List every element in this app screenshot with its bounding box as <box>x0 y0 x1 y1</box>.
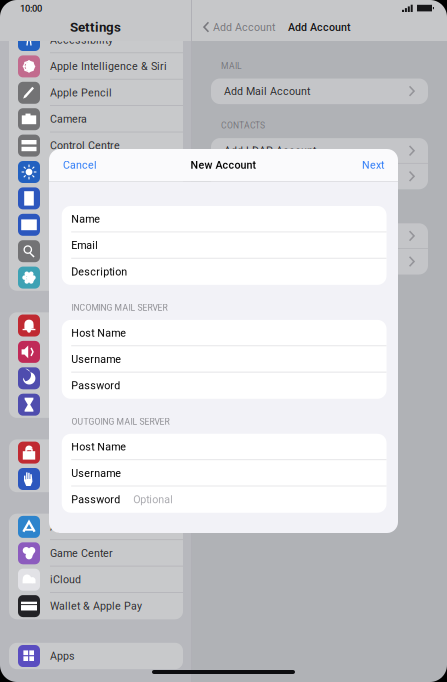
staticText: Apple Pencil <box>50 86 112 99</box>
staticText: OUTGOING MAIL SERVER <box>71 417 169 427</box>
staticText: Game Center <box>50 547 113 559</box>
staticText: Add Subscribed Calendar <box>224 255 348 268</box>
staticText: Add Mail Account <box>224 85 310 98</box>
button[interactable]: Name <box>62 206 386 232</box>
button[interactable]: Apps <box>9 643 183 669</box>
button[interactable]: Sounds <box>9 339 183 365</box>
button[interactable]: Accessibility <box>9 27 183 53</box>
staticText: Display & Brightness <box>50 166 152 178</box>
staticText: Optional <box>133 493 173 506</box>
button[interactable]: Add CalDAV Account <box>211 223 428 249</box>
button[interactable]: iCloud <box>9 566 183 593</box>
button[interactable]: Apple Intelligence & Siri <box>9 53 183 80</box>
staticText: Email <box>71 239 98 252</box>
button[interactable]: Cancel <box>63 159 97 171</box>
staticText: Sounds <box>50 346 86 358</box>
staticText: Name <box>71 213 100 225</box>
button[interactable]: Password <box>62 486 386 513</box>
button[interactable]: Multitasking & Gestures <box>9 212 183 238</box>
staticText: Privacy & Security <box>50 473 138 485</box>
button[interactable]: Notifications <box>9 312 183 339</box>
button[interactable]: Game Center <box>9 540 183 566</box>
button[interactable]: Wallet & Apple Pay <box>9 593 183 619</box>
staticText: iCloud <box>50 573 81 586</box>
button[interactable]: App Store <box>9 514 183 540</box>
staticText: Cancel <box>63 159 97 171</box>
staticText: Wallpaper <box>50 271 99 284</box>
staticText: Password <box>71 379 120 392</box>
staticText: Add Account <box>213 21 275 33</box>
button[interactable]: Home Screen & App Library <box>9 185 183 212</box>
staticText: INCOMING MAIL SERVER <box>71 303 167 313</box>
staticText: Host Name <box>71 327 126 339</box>
button[interactable]: Username <box>62 460 386 486</box>
staticText: MAIL <box>221 61 242 71</box>
button[interactable]: Camera <box>9 106 183 132</box>
button[interactable]: Next <box>362 159 384 171</box>
button[interactable]: Display & Brightness <box>9 159 183 185</box>
staticText: Settings <box>70 19 121 35</box>
staticText: Focus <box>50 372 80 384</box>
staticText: Add CalDAV Account <box>224 230 326 242</box>
staticText: Host Name <box>71 441 126 453</box>
staticText: App Store <box>50 521 97 533</box>
button[interactable]: Search <box>9 238 183 264</box>
staticText: Accessibility <box>50 34 113 46</box>
button[interactable]: Add Account <box>202 21 275 33</box>
staticText: Add LDAP Account <box>224 145 316 157</box>
button[interactable]: Control Centre <box>9 132 183 159</box>
button[interactable]: Password <box>62 372 386 399</box>
button[interactable]: Email <box>62 232 386 259</box>
staticText: Next <box>362 159 384 171</box>
staticText: Multitasking & Gestures <box>50 218 166 231</box>
staticText: Search <box>50 245 84 257</box>
staticText: Add CardDAV Account <box>224 170 333 183</box>
staticText: CONTACTS <box>221 121 265 131</box>
button[interactable]: Add CardDAV Account <box>211 164 428 189</box>
staticText: Apple Intelligence & Siri <box>50 60 167 73</box>
staticText: Camera <box>50 113 87 125</box>
staticText: Notifications <box>50 319 112 332</box>
button[interactable]: Apple Pencil <box>9 80 183 106</box>
staticText: Wallet & Apple Pay <box>50 600 142 612</box>
button[interactable]: Screen Time <box>9 391 183 418</box>
button[interactable]: Touch ID & Passcode <box>9 439 183 466</box>
button[interactable]: Focus <box>9 365 183 391</box>
button[interactable]: Wallpaper <box>9 264 183 291</box>
staticText: Password <box>71 493 120 506</box>
staticText: Description <box>71 265 127 278</box>
button[interactable]: Add LDAP Account <box>211 138 428 164</box>
button[interactable]: Description <box>62 259 386 285</box>
staticText: Control Centre <box>50 139 120 152</box>
button[interactable]: Host Name <box>62 320 386 346</box>
staticText: 10:00 <box>20 3 42 14</box>
staticText: Username <box>71 467 121 479</box>
button[interactable]: Host Name <box>62 434 386 460</box>
staticText: Add Account <box>288 21 351 33</box>
staticText: Username <box>71 353 121 366</box>
button[interactable]: Add Mail Account <box>211 78 428 104</box>
button[interactable]: Privacy & Security <box>9 466 183 492</box>
button[interactable]: Add Subscribed Calendar <box>211 249 428 274</box>
button[interactable]: Username <box>62 346 386 372</box>
staticText: Touch ID & Passcode <box>50 446 155 459</box>
staticText: Apps <box>50 650 75 662</box>
staticText: New Account <box>190 159 256 171</box>
